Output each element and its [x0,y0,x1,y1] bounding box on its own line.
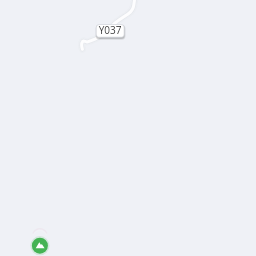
button[interactable]: Map [0,0,256,256]
button[interactable] [94,23,126,40]
button[interactable]: Mountain peak marker [28,226,52,250]
